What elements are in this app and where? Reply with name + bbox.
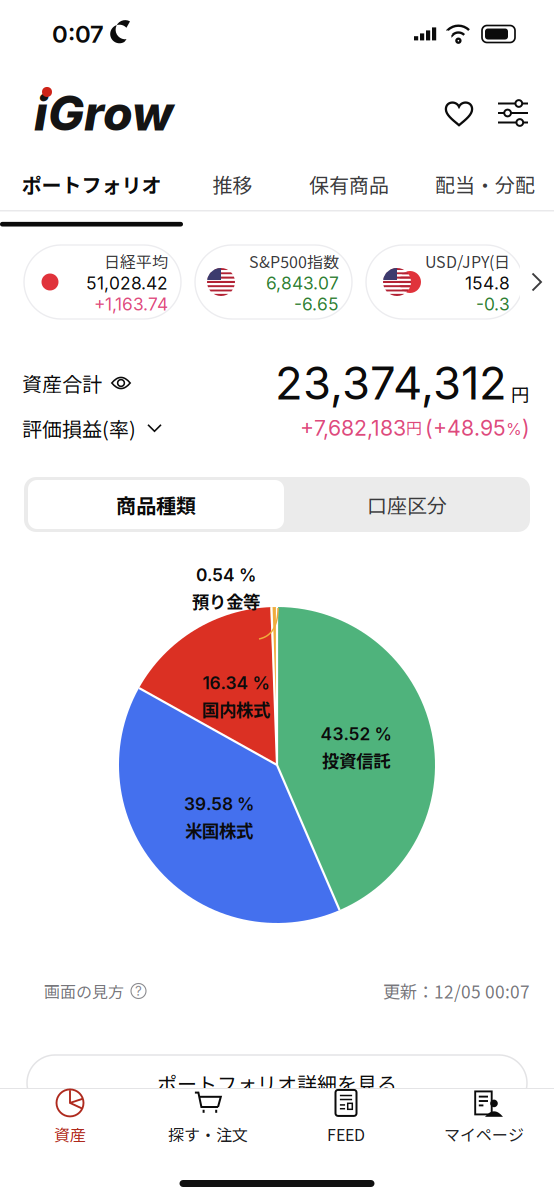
button[interactable]: 配当・分配	[416, 158, 554, 210]
staticText: +1,163.74	[94, 294, 168, 315]
staticText: 米国株式	[185, 817, 253, 842]
staticText: )	[522, 415, 530, 441]
button[interactable]: S&P500指数	[195, 245, 352, 319]
staticText: マイページ	[444, 1122, 524, 1146]
staticText: 推移	[212, 169, 252, 198]
button[interactable]: 評価損益(率)	[22, 413, 162, 442]
staticText: 投資信託	[322, 747, 390, 772]
staticText: 国内株式	[202, 696, 270, 721]
button[interactable]: 次へ	[520, 244, 554, 320]
staticText: 画面の見方	[44, 979, 124, 1003]
button[interactable]: マイページ	[415, 1089, 553, 1145]
staticText: 商品種類	[116, 490, 196, 519]
staticText: 配当・分配	[435, 169, 535, 198]
staticText: 探す・注文	[168, 1122, 248, 1146]
button[interactable]: ポートフォリオ詳細を見る	[27, 1055, 527, 1111]
staticText: +7,682,183	[300, 415, 406, 441]
staticText: 円	[406, 416, 422, 439]
staticText: %	[506, 419, 522, 439]
staticText: S&P500指数	[249, 249, 339, 273]
button[interactable]: USD/JPY(日	[366, 245, 523, 319]
staticText: ?	[135, 983, 142, 999]
staticText: 16.34 %	[202, 672, 269, 693]
staticText: 0:07	[52, 19, 104, 48]
button[interactable]: 画面の見方	[44, 979, 146, 1003]
staticText: 評価損益(率)	[22, 413, 136, 442]
staticText: 更新：12/05 00:07	[383, 978, 530, 1004]
button[interactable]: 保有商品	[282, 158, 416, 210]
button[interactable]: FEED	[277, 1089, 415, 1145]
button[interactable]: 口座区分	[288, 480, 526, 529]
staticText: 51,028.42	[86, 273, 168, 294]
staticText: 0.54 %	[196, 564, 256, 585]
staticText: 口座区分	[367, 490, 447, 519]
staticText: 23,374,312	[275, 356, 507, 410]
staticText: 資産合計	[22, 368, 102, 397]
button[interactable]: ポートフォリオ	[0, 158, 183, 210]
staticText: ポートフォリオ	[21, 169, 161, 198]
staticText: USD/JPY(日	[425, 249, 510, 273]
staticText: +48.95	[433, 415, 506, 441]
staticText: iGrow	[34, 84, 173, 142]
staticText: 円	[511, 380, 530, 407]
staticText: 154.8	[465, 273, 510, 294]
button[interactable]: 資産合計	[22, 368, 131, 397]
staticText: (	[425, 415, 433, 441]
staticText: 43.52 %	[320, 723, 391, 744]
staticText: -0.3	[476, 294, 510, 315]
button[interactable]: 設定	[492, 87, 534, 139]
button[interactable]: 推移	[183, 158, 282, 210]
staticText: 預り金等	[192, 588, 260, 613]
staticText: -6.65	[294, 294, 339, 315]
button[interactable]: 資産	[1, 1089, 139, 1145]
staticText: FEED	[327, 1122, 365, 1146]
staticText: 日経平均	[104, 249, 168, 273]
button[interactable]: 商品種類	[28, 480, 284, 529]
button[interactable]: 探す・注文	[139, 1089, 277, 1145]
staticText: 保有商品	[309, 169, 389, 198]
button[interactable]: 日経平均	[24, 245, 181, 319]
staticText: 39.58 %	[184, 793, 254, 814]
staticText: 6,843.07	[266, 273, 339, 294]
staticText: 資産	[54, 1122, 86, 1146]
staticText: ポートフォリオ詳細を見る	[157, 1068, 397, 1097]
button[interactable]: お気に入り	[437, 87, 481, 139]
